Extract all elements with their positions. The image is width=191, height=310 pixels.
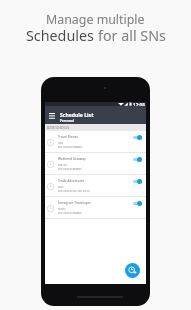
button[interactable]: Trade Adventures (45, 175, 146, 197)
button[interactable]: Toggle Trade Adventures (133, 177, 146, 186)
staticText: India (58, 141, 63, 144)
staticText: India (58, 142, 63, 145)
staticText: Schedules (26, 26, 98, 45)
staticText: New York (58, 164, 67, 167)
staticText: Travel Diaries (58, 135, 79, 139)
staticText: Schedule List (60, 112, 94, 119)
button[interactable]: Instagram Travelogue (45, 197, 146, 219)
staticText: for all SNs (98, 26, 166, 45)
staticText: 12:08 (133, 102, 145, 106)
staticText: Instagram Travelogue (58, 201, 91, 205)
staticText: Post 3 times on weekdays (58, 146, 83, 149)
staticText: Personal (60, 119, 74, 123)
staticText: New York (58, 163, 67, 166)
staticText: Manage multiple (46, 11, 145, 28)
button[interactable]: Travel Diaries (45, 131, 146, 153)
button[interactable]: Toggle Instagram Travelogue (133, 199, 146, 208)
button[interactable]: Open navigation menu (48, 112, 56, 120)
button[interactable]: Toggle Travel Diaries (133, 133, 146, 142)
staticText: Post 2 times on weekend (58, 168, 82, 171)
staticText: Tokyo (58, 185, 64, 188)
staticText: London (58, 207, 66, 210)
staticText: Post 2 times on weekend (58, 167, 82, 170)
staticText: Post 4 times on weekend (58, 211, 82, 214)
staticText: London (58, 208, 66, 211)
staticText: Weekend Getaway (58, 157, 86, 161)
staticText: Post 3 times on weekdays (58, 145, 83, 148)
staticText: Post 4 times on weekend (58, 212, 82, 215)
staticText: Tokyo (58, 186, 64, 189)
staticText: Post 5 times on Tue, Wed, Thu, Fri (58, 189, 90, 192)
button[interactable]: Add schedule (125, 263, 140, 278)
staticText: Post 5 times on Tue, Wed, Thu, Fri (58, 190, 90, 193)
staticText: ACTIVE SCHEDULES (47, 126, 70, 130)
staticText: Trade Adventures (58, 179, 85, 183)
button[interactable]: Toggle Weekend Getaway (133, 155, 146, 164)
button[interactable]: Weekend Getaway (45, 153, 146, 175)
